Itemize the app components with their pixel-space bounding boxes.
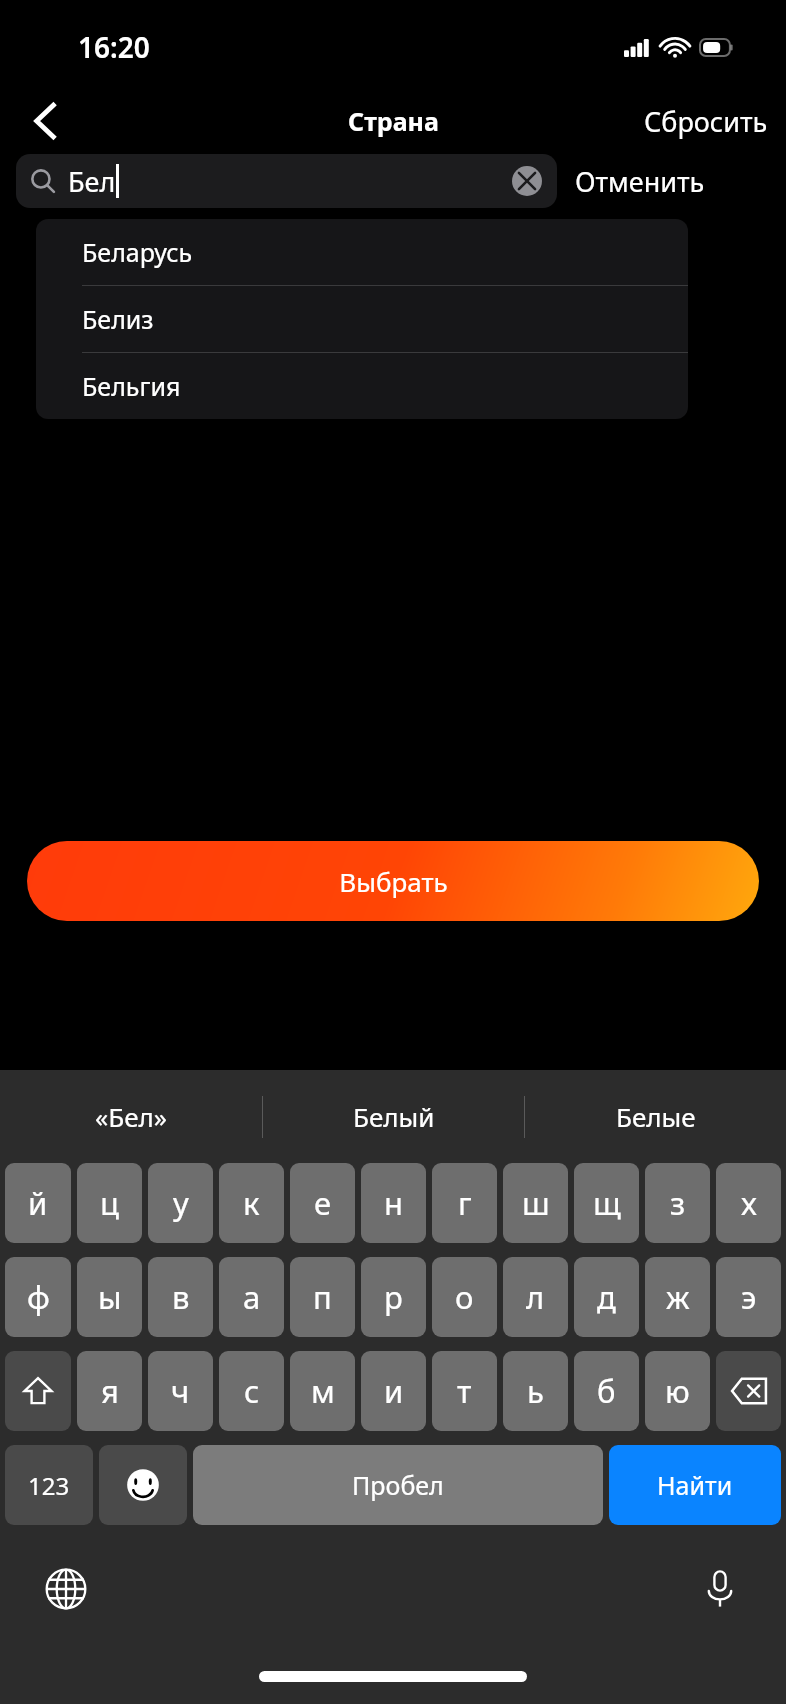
- button[interactable]: п: [290, 1257, 355, 1337]
- staticText: ш: [522, 1182, 550, 1224]
- staticText: д: [597, 1276, 616, 1318]
- button[interactable]: у: [148, 1163, 213, 1243]
- staticText: и: [384, 1370, 404, 1412]
- button[interactable]: л: [503, 1257, 568, 1337]
- staticText: м: [311, 1370, 335, 1412]
- staticText: э: [741, 1276, 757, 1318]
- button[interactable]: Voice input: [690, 1559, 750, 1619]
- button[interactable]: Shift: [5, 1351, 71, 1431]
- staticText: г: [458, 1182, 472, 1224]
- button[interactable]: ф: [5, 1257, 71, 1337]
- button[interactable]: к: [219, 1163, 284, 1243]
- staticText: «Бел»: [95, 1099, 168, 1134]
- button[interactable]: Выбрать: [27, 841, 759, 921]
- button[interactable]: а: [219, 1257, 284, 1337]
- staticText: у: [173, 1182, 189, 1224]
- staticText: ц: [100, 1182, 119, 1224]
- staticText: в: [172, 1276, 190, 1318]
- button[interactable]: Пробел: [193, 1445, 603, 1525]
- staticText: щ: [593, 1182, 621, 1224]
- button[interactable]: Белые: [525, 1070, 786, 1163]
- staticText: 16:20: [78, 28, 150, 66]
- button[interactable]: х: [716, 1163, 781, 1243]
- button[interactable]: и: [361, 1351, 426, 1431]
- staticText: а: [243, 1276, 261, 1318]
- button[interactable]: ю: [645, 1351, 710, 1431]
- button[interactable]: Бел: [16, 154, 557, 208]
- button[interactable]: Белиз: [36, 286, 688, 352]
- button[interactable]: д: [574, 1257, 639, 1337]
- button[interactable]: е: [290, 1163, 355, 1243]
- button[interactable]: ц: [77, 1163, 142, 1243]
- button[interactable]: я: [77, 1351, 142, 1431]
- button[interactable]: Бельгия: [36, 353, 688, 419]
- button[interactable]: ь: [503, 1351, 568, 1431]
- button[interactable]: ш: [503, 1163, 568, 1243]
- button[interactable]: г: [432, 1163, 497, 1243]
- staticText: п: [313, 1276, 332, 1318]
- button[interactable]: Сбросить: [626, 95, 786, 148]
- staticText: 123: [28, 1469, 70, 1502]
- button[interactable]: Backspace: [716, 1351, 781, 1431]
- button[interactable]: э: [716, 1257, 781, 1337]
- button[interactable]: Отменить: [557, 153, 723, 210]
- button[interactable]: б: [574, 1351, 639, 1431]
- button[interactable]: н: [361, 1163, 426, 1243]
- staticText: ж: [666, 1276, 690, 1318]
- staticText: з: [670, 1182, 686, 1224]
- button[interactable]: «Бел»: [0, 1070, 262, 1163]
- staticText: Белиз: [82, 302, 154, 336]
- button[interactable]: ж: [645, 1257, 710, 1337]
- staticText: ю: [665, 1370, 690, 1412]
- staticText: р: [384, 1276, 403, 1318]
- button[interactable]: Change keyboard language: [36, 1559, 96, 1619]
- button[interactable]: щ: [574, 1163, 639, 1243]
- button[interactable]: с: [219, 1351, 284, 1431]
- button[interactable]: м: [290, 1351, 355, 1431]
- staticText: Пробел: [352, 1468, 444, 1502]
- button[interactable]: ы: [77, 1257, 142, 1337]
- staticText: ч: [171, 1370, 190, 1412]
- staticText: Найти: [657, 1468, 733, 1502]
- button[interactable]: Clear: [511, 165, 543, 197]
- staticText: Белые: [616, 1099, 696, 1134]
- staticText: Бел: [68, 163, 116, 200]
- staticText: Беларусь: [82, 235, 193, 269]
- button[interactable]: Белый: [263, 1070, 524, 1163]
- button[interactable]: Беларусь: [36, 219, 688, 285]
- staticText: х: [741, 1182, 757, 1224]
- staticText: л: [526, 1276, 545, 1318]
- button[interactable]: 123: [5, 1445, 93, 1525]
- staticText: б: [597, 1370, 616, 1412]
- staticText: я: [101, 1370, 119, 1412]
- button[interactable]: о: [432, 1257, 497, 1337]
- staticText: Белый: [353, 1099, 435, 1134]
- staticText: ы: [98, 1276, 122, 1318]
- staticText: с: [244, 1370, 260, 1412]
- staticText: й: [28, 1182, 48, 1224]
- staticText: о: [455, 1276, 474, 1318]
- staticText: Выбрать: [339, 864, 448, 899]
- button[interactable]: в: [148, 1257, 213, 1337]
- staticText: н: [384, 1182, 404, 1224]
- button[interactable]: т: [432, 1351, 497, 1431]
- staticText: е: [314, 1182, 332, 1224]
- staticText: Страна: [348, 104, 439, 138]
- staticText: Сбросить: [644, 103, 768, 140]
- staticText: к: [243, 1182, 260, 1224]
- button[interactable]: й: [5, 1163, 71, 1243]
- button[interactable]: Найти: [609, 1445, 781, 1525]
- button[interactable]: р: [361, 1257, 426, 1337]
- staticText: ф: [27, 1276, 50, 1318]
- button[interactable]: Back: [14, 90, 76, 152]
- button[interactable]: ч: [148, 1351, 213, 1431]
- staticText: т: [457, 1370, 472, 1412]
- staticText: Отменить: [575, 163, 705, 200]
- staticText: ь: [527, 1370, 544, 1412]
- staticText: Бельгия: [82, 369, 181, 403]
- button[interactable]: Emoji: [99, 1445, 187, 1525]
- button[interactable]: з: [645, 1163, 710, 1243]
